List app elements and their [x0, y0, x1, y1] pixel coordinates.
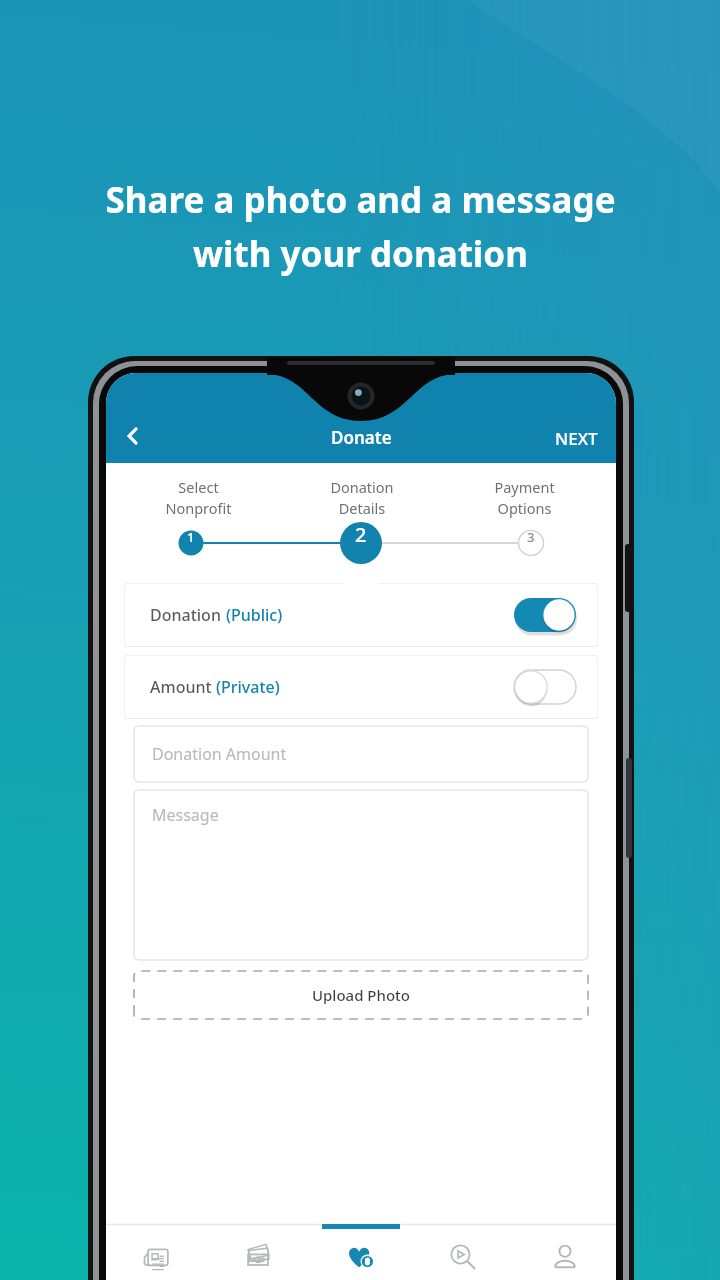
- button[interactable]: Profile: [514, 1224, 616, 1280]
- staticText: Upload Photo: [312, 985, 410, 1005]
- button[interactable]: Donation: [124, 583, 598, 647]
- button[interactable]: Message: [134, 790, 588, 960]
- button[interactable]: Switch off: [514, 670, 576, 704]
- button[interactable]: Discover: [412, 1224, 514, 1280]
- staticText: Share a photo and a message with your do…: [105, 176, 616, 278]
- staticText: Donation Details: [330, 477, 394, 519]
- staticText: Donation Amount: [152, 743, 287, 765]
- staticText: Amount: [150, 676, 216, 698]
- staticText: 3: [527, 528, 535, 546]
- button[interactable]: Upload Photo: [134, 971, 588, 1019]
- button[interactable]: Payments: [208, 1224, 310, 1280]
- staticText: Select Nonprofit: [165, 477, 232, 519]
- staticText: 2: [355, 521, 367, 548]
- staticText: Message: [152, 804, 219, 826]
- button[interactable]: Back: [106, 409, 160, 463]
- staticText: (Private): [216, 676, 280, 698]
- staticText: Donate: [331, 426, 392, 449]
- button[interactable]: Donation Amount: [134, 726, 588, 782]
- staticText: NEXT: [555, 427, 598, 450]
- staticText: 1: [187, 528, 195, 546]
- staticText: (Public): [226, 604, 283, 626]
- button[interactable]: Amount: [124, 655, 598, 719]
- button[interactable]: Switch on: [514, 598, 576, 632]
- button[interactable]: Donate: [310, 1224, 412, 1280]
- button[interactable]: News: [106, 1224, 208, 1280]
- staticText: Payment Options: [494, 477, 555, 519]
- staticText: Donation: [150, 604, 226, 626]
- button[interactable]: NEXT: [555, 427, 616, 463]
